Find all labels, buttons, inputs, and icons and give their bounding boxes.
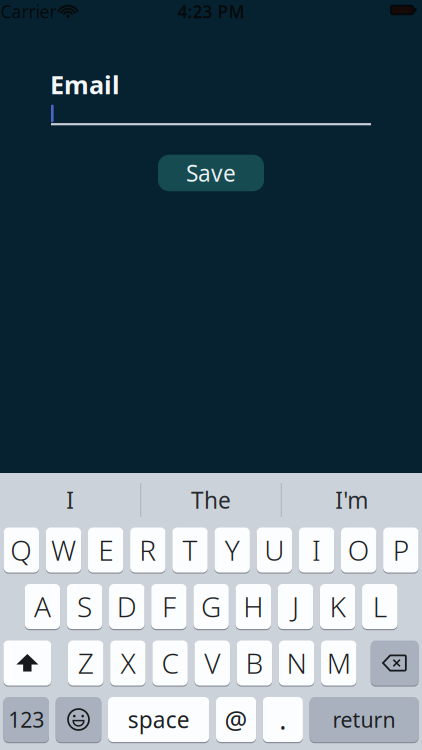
staticText: I [66,485,74,515]
button[interactable]: . [263,697,303,742]
staticText: N [287,644,307,682]
staticText: P [393,531,409,569]
staticText: W [51,531,76,569]
button[interactable]: B [237,640,272,685]
button[interactable]: Z [68,640,103,685]
staticText: G [201,588,221,625]
button[interactable]: C [152,640,188,685]
button[interactable]: Q [4,527,39,572]
staticText: B [245,644,263,682]
staticText: K [330,588,346,625]
button[interactable]: K [320,584,355,629]
button[interactable]: O [341,527,376,572]
button[interactable]: R [130,527,166,572]
button[interactable]: V [194,640,230,685]
button[interactable]: @ [216,697,256,742]
staticText: V [204,644,220,682]
button[interactable]: The [146,478,276,522]
button[interactable]: H [236,584,271,629]
staticText: 123 [8,705,44,734]
staticText: Save [186,158,236,188]
staticText: T [182,531,197,569]
button[interactable]: Numbers [3,697,49,742]
staticText: H [243,588,263,625]
button[interactable]: W [46,527,81,572]
staticText: Q [10,531,32,569]
button[interactable]: Shift [3,640,51,685]
staticText: A [34,588,51,625]
staticText: F [162,588,176,625]
staticText: The [191,485,231,515]
button[interactable]: N [279,640,314,685]
staticText: I [312,531,321,569]
button[interactable]: Save [158,155,264,191]
button[interactable]: return [310,697,419,742]
button[interactable]: M [321,640,356,685]
button[interactable]: Emoji [56,697,101,742]
staticText: D [117,588,137,625]
button[interactable]: I [299,527,334,572]
button[interactable]: Y [214,527,250,572]
staticText: J [292,588,299,625]
staticText: X [120,644,135,682]
staticText: Z [78,644,94,682]
button[interactable]: D [109,584,144,629]
staticText: 4:23 PM [177,0,244,23]
staticText: space [128,704,190,734]
button[interactable]: E [88,527,123,572]
button[interactable]: P [383,527,419,572]
staticText: Email [50,68,120,101]
button[interactable]: Delete [371,640,419,685]
staticText: Carrier [0,0,56,23]
staticText: . [279,702,286,737]
button[interactable]: S [67,584,102,629]
staticText: C [162,644,179,682]
staticText: I'm [335,485,368,515]
button[interactable]: F [151,584,187,629]
staticText: M [327,644,351,682]
button[interactable]: J [278,584,313,629]
button[interactable]: X [110,640,146,685]
button[interactable]: L [362,584,398,629]
staticText: Y [225,531,240,569]
button[interactable]: I [5,478,135,522]
staticText: U [264,531,284,569]
staticText: O [348,531,370,569]
staticText: L [373,588,387,625]
button[interactable]: T [172,527,208,572]
button[interactable]: space [108,697,209,742]
button[interactable]: I'm [287,478,417,522]
staticText: @ [225,703,248,736]
staticText: S [77,588,92,625]
button[interactable]: U [257,527,292,572]
button[interactable]: Email [51,95,371,125]
staticText: E [98,531,113,569]
staticText: return [333,705,396,734]
button[interactable]: A [25,584,60,629]
staticText: R [139,531,156,569]
button[interactable]: G [193,584,229,629]
